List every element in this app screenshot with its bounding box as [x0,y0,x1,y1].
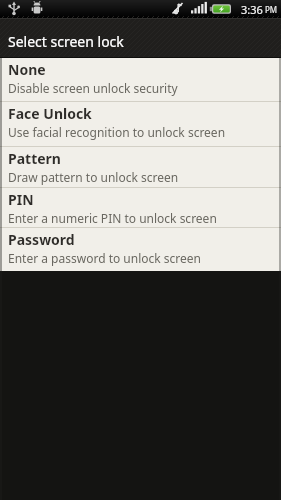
button[interactable]: None [0,58,281,102]
button[interactable]: Password [0,228,281,271]
staticText: PIN [8,190,34,209]
staticText: Select screen lock [8,32,124,51]
button[interactable]: PIN [0,188,281,228]
staticText: Use facial recognition to unlock screen [8,124,226,140]
button[interactable]: Pattern [0,147,281,188]
staticText: Pattern [8,149,61,168]
staticText: Face Unlock [8,104,92,123]
button[interactable]: Face Unlock [0,102,281,147]
staticText: Enter a numeric PIN to unlock screen [8,210,217,226]
staticText: Enter a password to unlock screen [8,250,201,266]
staticText: None [8,60,46,79]
staticText: PM [265,4,278,15]
staticText: Password [8,230,75,249]
staticText: Draw pattern to unlock screen [8,169,179,185]
staticText: 3:36 [241,2,263,17]
staticText: Disable screen unlock security [8,80,178,96]
